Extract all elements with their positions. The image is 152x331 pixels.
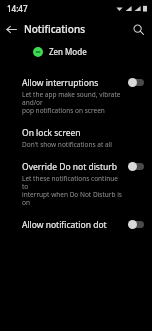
- staticText: Allow notification dot: [22, 219, 107, 231]
- staticText: Override Do not disturb: [22, 161, 117, 173]
- staticText: 14:47: [7, 3, 28, 14]
- button[interactable]: Override Do not disturb: [0, 155, 152, 213]
- button[interactable]: Allow notification dot: [0, 213, 152, 237]
- button[interactable]: Override Do not disturb: [128, 162, 144, 171]
- button[interactable]: Allow interruptions: [128, 78, 144, 87]
- staticText: Allow interruptions: [22, 77, 99, 89]
- button[interactable]: Back: [0, 18, 22, 40]
- staticText: Zen Mode: [49, 46, 87, 57]
- staticText: Let the app make sound, vibrate and/or p…: [22, 90, 124, 115]
- button[interactable]: Zen Mode: [0, 41, 152, 62]
- button[interactable]: On lock screen: [0, 121, 152, 155]
- staticText: On lock screen: [22, 127, 81, 139]
- staticText: Let these notifications continue to inte…: [22, 174, 124, 207]
- staticText: Don't show notifications at all: [22, 140, 112, 149]
- button[interactable]: Allow interruptions: [0, 71, 152, 121]
- button[interactable]: Search: [127, 18, 149, 40]
- button[interactable]: Allow notification dot: [128, 220, 144, 229]
- staticText: Notifications: [24, 22, 86, 36]
